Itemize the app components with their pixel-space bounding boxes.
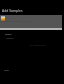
staticText: Logs	[4, 69, 9, 72]
staticText: no samples yet	[30, 44, 46, 47]
staticText: val sample = listOf(1, 2, 3, 4, 5)	[1, 20, 32, 23]
staticText: Add Samples	[2, 8, 23, 13]
staticText: Output	[6, 37, 14, 40]
staticText: Result	[5, 33, 12, 36]
